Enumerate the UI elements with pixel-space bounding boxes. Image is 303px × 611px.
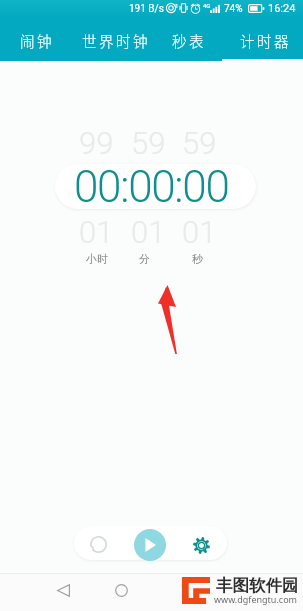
staticText: 世界时钟 (82, 30, 150, 51)
button[interactable] (160, 17, 222, 61)
staticText: 1 (175, 2, 179, 9)
button[interactable] (0, 17, 69, 61)
staticText: www.dgfengtu.com (214, 593, 298, 605)
staticText: 分 (139, 252, 150, 266)
staticText: 99 (79, 125, 114, 157)
staticText: 秒表 (172, 30, 206, 51)
staticText: 01 (79, 214, 114, 246)
staticText: 计时器 (240, 30, 291, 51)
button[interactable]: Reset (82, 528, 114, 560)
staticText: 01 (182, 214, 217, 246)
staticText: 4G (203, 2, 211, 9)
staticText: 秒 (192, 252, 203, 266)
staticText: 闹钟 (20, 30, 54, 51)
button[interactable] (69, 17, 160, 61)
staticText: 丰图软件园 (216, 575, 299, 594)
button[interactable]: Back (47, 574, 79, 606)
staticText: 00:00:00 (74, 161, 229, 208)
button[interactable] (222, 17, 303, 61)
staticText: 01 (131, 214, 166, 246)
staticText: 59 (131, 125, 166, 157)
staticText: 16:24 (268, 2, 296, 15)
button[interactable]: Start (134, 529, 166, 561)
staticText: 59 (182, 125, 217, 157)
staticText: 191 B/s (129, 3, 164, 15)
staticText: 小时 (86, 252, 108, 266)
button[interactable]: Settings (185, 529, 217, 561)
staticText: 74% (224, 3, 243, 15)
button[interactable]: Home (105, 574, 137, 606)
